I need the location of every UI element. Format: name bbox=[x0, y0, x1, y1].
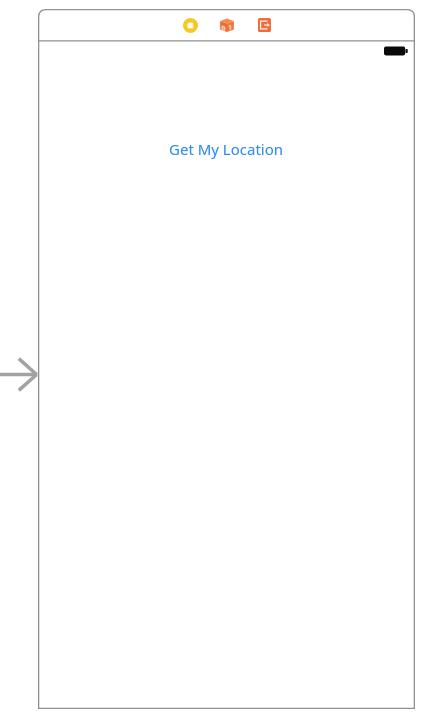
button[interactable]: Stop bbox=[178, 13, 202, 37]
other: Arrow bbox=[0, 356, 39, 396]
button[interactable]: Get My Location bbox=[169, 139, 284, 159]
button[interactable]: Package bbox=[215, 13, 239, 37]
button[interactable]: Export bbox=[252, 13, 276, 37]
staticText: Get My Location bbox=[169, 139, 284, 159]
